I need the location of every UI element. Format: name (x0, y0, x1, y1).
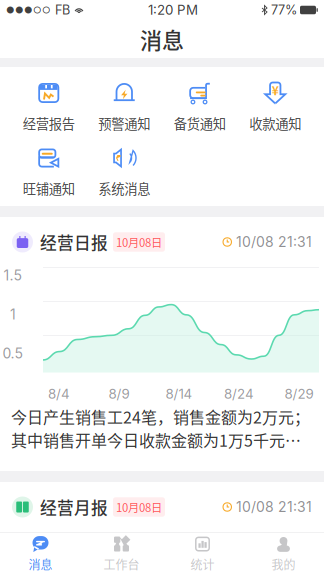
button[interactable]: 备货通知 (162, 80, 237, 145)
button[interactable]: 我的 (243, 532, 324, 576)
staticText: 系统消息 (98, 178, 150, 198)
button[interactable]: ¥ (237, 80, 313, 145)
staticText: ¥ (272, 81, 279, 99)
staticText: 经营报告 (23, 113, 75, 133)
staticText: 10月08日 (116, 499, 162, 515)
staticText: FB (51, 2, 70, 18)
button[interactable]: 消息 (0, 532, 81, 576)
button[interactable]: 经营报告 (11, 80, 86, 145)
button[interactable]: 预警通知 (86, 80, 162, 145)
staticText: 经营月报 (40, 495, 108, 519)
staticText: 10月08日 (116, 234, 162, 250)
staticText: ●●●○○ (6, 4, 51, 16)
staticText: 旺铺通知 (23, 178, 75, 198)
staticText: 预警通知 (98, 113, 150, 133)
staticText: 8/24 (224, 386, 254, 402)
staticText: 消息 (140, 23, 184, 55)
staticText: 消息 (28, 556, 52, 573)
staticText: 8/9 (108, 386, 129, 402)
staticText: 统计 (190, 556, 214, 573)
staticText: 8/29 (284, 386, 313, 402)
staticText: 备货通知 (174, 113, 226, 133)
button[interactable]: 系统消息 (86, 145, 162, 210)
staticText: 77% (271, 2, 297, 18)
staticText: 1 (10, 306, 16, 323)
staticText: 1:20 PM (148, 2, 198, 18)
staticText: 0.5 (2, 345, 23, 362)
button[interactable]: 统计 (162, 532, 243, 576)
staticText: 8/14 (165, 386, 192, 402)
staticText: 我的 (271, 556, 295, 573)
staticText: 8/4 (48, 386, 70, 402)
staticText: 经营日报 (40, 230, 108, 254)
button[interactable]: 旺铺通知 (11, 145, 86, 210)
staticText: 1.5 (3, 267, 22, 284)
staticText: 今日产生销售工24笔，销售金额为2万元；其中销售开单今日收款金额为1万5千元，今… (11, 405, 313, 451)
staticText: 工作台 (103, 556, 139, 573)
staticText: 10/08 21:31 (236, 498, 312, 515)
staticText: 收款通知 (249, 113, 301, 133)
button[interactable]: 工作台 (81, 532, 162, 576)
staticText: 10/08 21:31 (236, 233, 312, 250)
